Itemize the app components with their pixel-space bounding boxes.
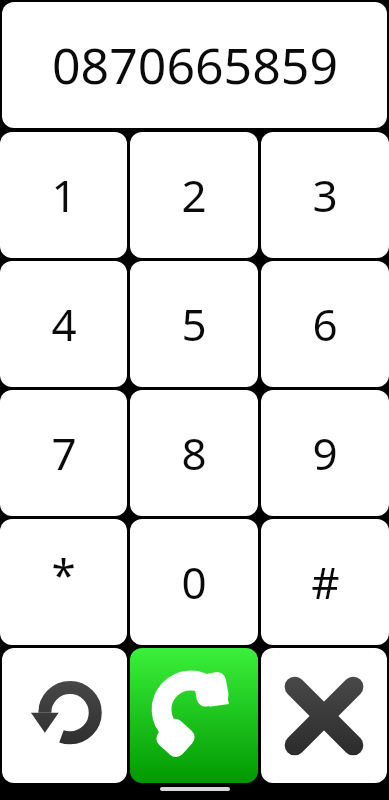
staticText: # bbox=[311, 552, 340, 612]
staticText: 9 bbox=[312, 423, 338, 483]
button[interactable]: # bbox=[261, 519, 389, 645]
button[interactable]: 2 bbox=[130, 132, 258, 258]
staticText: 7 bbox=[51, 423, 77, 483]
button[interactable]: Call bbox=[130, 648, 258, 783]
button[interactable]: Backspace bbox=[2, 648, 127, 783]
staticText: 5 bbox=[181, 294, 207, 354]
staticText: * bbox=[51, 544, 76, 604]
button[interactable]: 7 bbox=[0, 390, 127, 516]
button[interactable]: 0870665859 bbox=[2, 2, 387, 128]
staticText: 3 bbox=[312, 165, 338, 225]
button[interactable]: 9 bbox=[261, 390, 389, 516]
button[interactable]: 0 bbox=[130, 519, 258, 645]
button[interactable]: * bbox=[0, 519, 127, 645]
button[interactable]: 3 bbox=[261, 132, 389, 258]
button[interactable]: 8 bbox=[130, 390, 258, 516]
button[interactable]: 4 bbox=[0, 261, 127, 387]
staticText: 1 bbox=[51, 165, 77, 225]
button[interactable]: 6 bbox=[261, 261, 389, 387]
staticText: 0 bbox=[181, 552, 207, 612]
staticText: 8 bbox=[181, 423, 207, 483]
staticText: 6 bbox=[312, 294, 338, 354]
button[interactable]: Clear bbox=[261, 648, 387, 783]
staticText: 2 bbox=[181, 165, 207, 225]
staticText: 4 bbox=[51, 294, 77, 354]
staticText: 0870665859 bbox=[52, 31, 338, 99]
button[interactable]: 1 bbox=[0, 132, 127, 258]
button[interactable]: 5 bbox=[130, 261, 258, 387]
